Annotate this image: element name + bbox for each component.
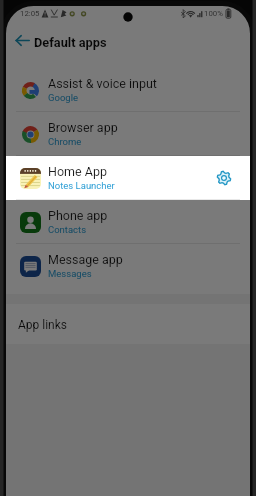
staticText: Google	[48, 92, 78, 103]
staticText: App links	[18, 318, 68, 332]
staticText: Default apps	[34, 35, 107, 50]
button[interactable]: Home App	[0, 156, 256, 200]
staticText: 100%	[204, 9, 223, 18]
staticText: Browser app	[48, 120, 118, 135]
button[interactable]: Browser app	[0, 112, 256, 156]
button[interactable]: Assist & voice input	[0, 68, 256, 112]
button[interactable]: Phone app	[0, 200, 256, 244]
staticText: Message app	[48, 252, 123, 267]
staticText: Assist & voice input	[48, 76, 157, 91]
staticText: 12:05	[20, 9, 40, 18]
staticText: Notes Launcher	[48, 180, 115, 191]
button[interactable]: Navigate up	[10, 28, 34, 52]
staticText: Messages	[48, 268, 92, 279]
button[interactable]: Message app	[0, 244, 256, 288]
staticText: Phone app	[48, 208, 108, 223]
staticText: Home App	[48, 164, 107, 179]
staticText: Chrome	[48, 136, 82, 147]
button[interactable]: Home app settings	[212, 166, 236, 190]
staticText: Contacts	[48, 224, 87, 235]
